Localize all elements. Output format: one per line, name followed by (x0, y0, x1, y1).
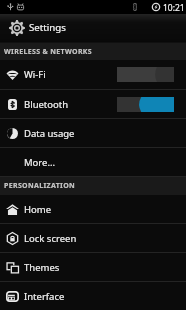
staticText: Interface (24, 290, 65, 303)
button[interactable]: Lock screen (0, 224, 186, 252)
staticText: Themes (24, 261, 60, 274)
button[interactable]: On (117, 97, 174, 112)
staticText: Wi-Fi (24, 68, 46, 81)
staticText: Home (24, 203, 52, 216)
button[interactable]: Data usage (0, 119, 186, 147)
button[interactable]: More... (0, 148, 186, 176)
staticText: PERSONALIZATION (4, 181, 76, 191)
staticText: WIRELESS & NETWORKS (4, 47, 93, 57)
button[interactable]: Wi-Fi (0, 60, 186, 89)
staticText: More... (24, 156, 56, 169)
other: Settings (9, 20, 25, 36)
button[interactable]: Off (117, 67, 174, 82)
staticText: Data usage (24, 127, 75, 140)
button[interactable]: Bluetooth (0, 90, 186, 118)
staticText: Lock screen (24, 232, 77, 245)
staticText: Settings (29, 21, 66, 34)
staticText: Bluetooth (24, 98, 69, 111)
button[interactable]: Interface (0, 282, 186, 310)
button[interactable]: Settings (0, 14, 186, 41)
button[interactable]: Themes (0, 253, 186, 281)
staticText: 10:21 (163, 2, 185, 14)
button[interactable]: Home (0, 195, 186, 223)
